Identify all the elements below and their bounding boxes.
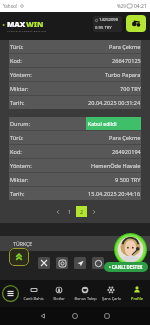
staticText: Kabul edildi (88, 120, 117, 127)
staticText: Canlı Bahis (23, 296, 44, 301)
button[interactable]: Instagram (56, 257, 68, 269)
button[interactable]: Şans Çarkı (98, 280, 124, 307)
staticText: Miktar: (10, 176, 29, 184)
button[interactable]: Back (35, 308, 51, 324)
button[interactable]: Kabul edildi (86, 117, 141, 130)
button[interactable]: • CANLI DESTEK (104, 262, 148, 272)
staticText: 15.04.2025 20:44:16 (88, 190, 141, 198)
button[interactable]: Scroll to top (9, 248, 29, 266)
staticText: Para Çekme (109, 43, 141, 51)
button[interactable]: MaxWin home (2, 16, 47, 34)
button[interactable]: Menu (0, 280, 21, 307)
button[interactable]: Home (67, 308, 83, 324)
button[interactable]: Next page (88, 206, 99, 217)
button[interactable]: 14252090 (93, 16, 122, 32)
staticText: WIN (26, 19, 44, 29)
staticText: 04:21 (134, 3, 147, 10)
staticText: Tarih: (10, 190, 25, 198)
staticText: Slotlar (53, 296, 65, 301)
button[interactable]: Slotlar (46, 280, 72, 307)
staticText: 264920194 (112, 148, 141, 156)
staticText: 700 TRY (120, 85, 141, 93)
button[interactable]: Info (92, 257, 104, 269)
button[interactable]: Canlı Bahis (21, 280, 46, 307)
button[interactable]: 1 (64, 206, 75, 217)
staticText: HemenÖde Havale (91, 162, 141, 170)
button[interactable]: TÜRKÇE (9, 236, 65, 251)
staticText: Miktar: (10, 85, 29, 93)
staticText: 9 500 TRY (115, 176, 141, 184)
button[interactable]: Telegram (74, 257, 86, 269)
button[interactable]: X (38, 257, 50, 269)
staticText: Bonus Talep (74, 296, 97, 301)
staticText: 0.95 TRY (95, 25, 112, 31)
button[interactable]: 2 (76, 206, 87, 217)
staticText: CASINO & SPORTS BETTING (7, 29, 47, 32)
staticText: Türü: (10, 43, 24, 51)
staticText: Turbo Papara (105, 71, 141, 79)
staticText: Kod: (10, 148, 22, 156)
button[interactable]: Recents (99, 308, 115, 324)
staticText: MAX (7, 19, 26, 29)
button[interactable]: Bonus Talep (72, 280, 98, 307)
button[interactable]: Sports (126, 15, 146, 32)
staticText: 1 (68, 208, 72, 215)
staticText: 20.04.2025 00:31:24 (88, 99, 141, 107)
button[interactable]: Previous page (52, 206, 63, 217)
staticText: 14252090 (99, 17, 119, 23)
staticText: Para Çekme (109, 134, 141, 142)
staticText: Yöntem: (10, 162, 32, 170)
staticText: 2 (80, 208, 84, 215)
staticText: Türü: (10, 134, 24, 142)
staticText: Durum: (10, 120, 31, 128)
staticText: Kod: (10, 57, 22, 65)
staticText: Tarih: (10, 99, 25, 107)
staticText: • CANLI DESTEK (109, 264, 143, 270)
staticText: %29 (117, 3, 126, 9)
button[interactable]: Live support agent (114, 233, 147, 266)
staticText: Şans Çarkı (102, 296, 121, 301)
staticText: Yöntem: (10, 71, 32, 79)
staticText: Profile (131, 296, 143, 301)
button[interactable]: Profile (124, 280, 150, 307)
staticText: TÜRKÇE (13, 240, 33, 247)
staticText: 266470125 (112, 57, 141, 65)
staticText: Yahoo! (3, 3, 18, 9)
